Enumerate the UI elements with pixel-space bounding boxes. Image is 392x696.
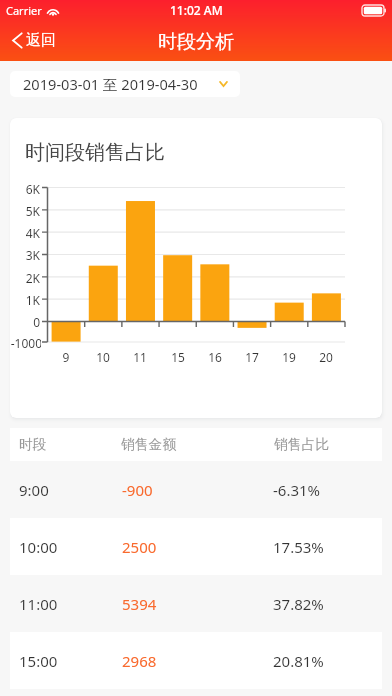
staticText: 2968 bbox=[122, 651, 157, 671]
button[interactable]: 11:00 bbox=[10, 575, 382, 632]
staticText: -6.31% bbox=[273, 480, 321, 500]
staticText: 10 bbox=[88, 349, 118, 365]
staticText: 1K bbox=[10, 292, 40, 308]
staticText: 5K bbox=[10, 203, 40, 219]
staticText: 11:02 AM bbox=[170, 2, 223, 18]
button[interactable]: 15:00 bbox=[10, 632, 382, 689]
staticText: 20 bbox=[311, 349, 341, 365]
staticText: 9 bbox=[51, 349, 81, 365]
staticText: 2500 bbox=[122, 537, 157, 557]
staticText: 时间段销售占比 bbox=[25, 140, 165, 165]
staticText: Carrier bbox=[6, 3, 42, 18]
staticText: 19 bbox=[274, 349, 304, 365]
staticText: 返回 bbox=[26, 31, 56, 50]
staticText: 4K bbox=[10, 225, 40, 241]
staticText: 9:00 bbox=[19, 480, 49, 500]
staticText: 15 bbox=[163, 349, 193, 365]
staticText: -900 bbox=[122, 480, 153, 500]
staticText: 15:00 bbox=[19, 651, 58, 671]
staticText: -1000 bbox=[10, 335, 41, 351]
staticText: 3K bbox=[10, 247, 40, 263]
staticText: 11:00 bbox=[19, 594, 58, 614]
staticText: 20.81% bbox=[273, 651, 324, 671]
staticText: 11 bbox=[125, 349, 155, 365]
staticText: 16 bbox=[200, 349, 230, 365]
staticText: 5394 bbox=[122, 594, 157, 614]
staticText: 37.82% bbox=[273, 594, 324, 614]
button[interactable]: 返回 bbox=[0, 31, 64, 50]
staticText: 销售占比 bbox=[274, 436, 330, 453]
staticText: 销售金额 bbox=[121, 436, 177, 453]
staticText: 时段 bbox=[19, 436, 47, 453]
staticText: 时段分析 bbox=[158, 30, 234, 54]
staticText: 2019-03-01 至 2019-04-30 bbox=[23, 74, 198, 94]
button[interactable]: 9:00 bbox=[10, 461, 382, 518]
button[interactable]: 10:00 bbox=[10, 518, 382, 575]
button[interactable]: 2019-03-01 至 2019-04-30 bbox=[10, 71, 240, 97]
staticText: 0 bbox=[10, 314, 40, 330]
staticText: 2K bbox=[10, 270, 40, 286]
staticText: 6K bbox=[10, 181, 40, 197]
staticText: 17 bbox=[237, 349, 267, 365]
staticText: 10:00 bbox=[19, 537, 58, 557]
staticText: 17.53% bbox=[273, 537, 324, 557]
